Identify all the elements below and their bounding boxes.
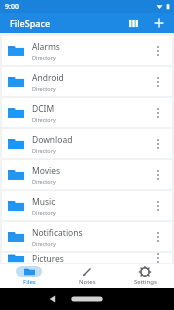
staticText: Directory xyxy=(32,85,56,92)
staticText: Directory xyxy=(32,178,56,185)
staticText: Notifications xyxy=(32,227,83,239)
staticText: DCIM xyxy=(32,103,55,115)
staticText: Directory xyxy=(32,147,56,154)
staticText: Directory xyxy=(32,116,56,123)
button[interactable]: Switch view xyxy=(124,14,142,32)
button[interactable]: Files xyxy=(0,264,58,288)
button[interactable]: More options for DCIM xyxy=(150,100,166,126)
button[interactable]: Alarms xyxy=(2,36,172,65)
staticText: Android xyxy=(32,72,64,84)
button[interactable]: Pictures xyxy=(2,253,172,263)
staticText: Alarms xyxy=(32,41,60,53)
button[interactable]: More options for Download xyxy=(150,131,166,157)
staticText: Download xyxy=(32,134,73,146)
button[interactable]: Movies xyxy=(2,160,172,189)
button[interactable]: More options for Music xyxy=(150,193,166,219)
staticText: Files xyxy=(23,278,36,286)
button[interactable]: Settings xyxy=(116,264,174,288)
staticText: 9:00 xyxy=(5,2,19,12)
staticText: Directory xyxy=(32,240,56,247)
staticText: Directory xyxy=(32,54,56,61)
button[interactable]: Music xyxy=(2,191,172,220)
button[interactable]: Notifications xyxy=(2,222,172,251)
button[interactable]: More options for Movies xyxy=(150,162,166,188)
staticText: Pictures xyxy=(32,253,64,263)
button[interactable]: More options for Pictures xyxy=(150,253,166,263)
button[interactable]: Android xyxy=(2,67,172,96)
button[interactable]: Add xyxy=(150,14,168,32)
button[interactable]: More options for Android xyxy=(150,69,166,95)
staticText: Settings xyxy=(134,278,157,286)
staticText: Directory xyxy=(32,209,56,216)
staticText: Notes xyxy=(79,278,96,286)
button[interactable]: More options for Notifications xyxy=(150,224,166,250)
button[interactable]: DCIM xyxy=(2,98,172,127)
staticText: FileSpace xyxy=(10,17,51,29)
button[interactable]: Download xyxy=(2,129,172,158)
staticText: Music xyxy=(32,196,56,208)
button[interactable]: Notes xyxy=(58,264,116,288)
staticText: Movies xyxy=(32,165,61,177)
button[interactable]: More options for Alarms xyxy=(150,38,166,64)
